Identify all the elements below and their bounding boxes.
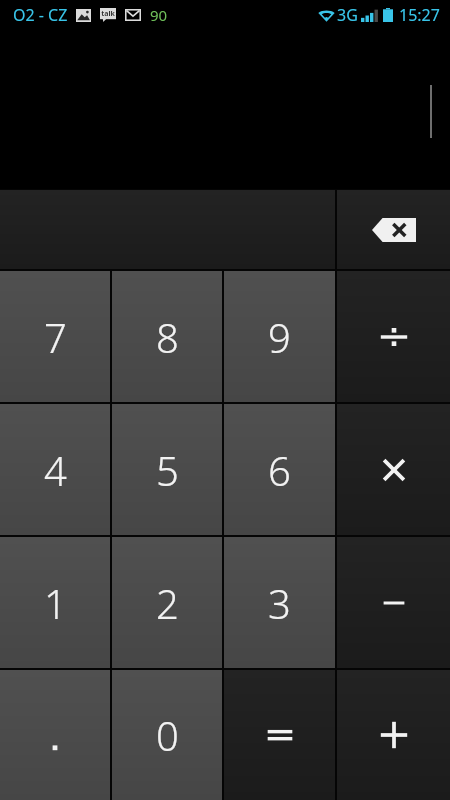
button[interactable]: 5 [112, 404, 222, 535]
staticText: 0 [156, 708, 179, 762]
button[interactable]: Multiply [337, 404, 450, 535]
button[interactable]: Divide [337, 271, 450, 402]
button[interactable]: 6 [224, 404, 335, 535]
button[interactable]: 3 [224, 537, 335, 668]
button[interactable]: 0 [112, 670, 222, 800]
staticText: 3G [337, 4, 358, 26]
staticText: 5 [156, 443, 179, 497]
button[interactable]: 4 [0, 404, 110, 535]
staticText: 15:27 [399, 4, 440, 26]
button[interactable]: 9 [224, 271, 335, 402]
staticText: 3 [268, 576, 291, 630]
staticText: 9 [268, 310, 291, 364]
button[interactable]: Subtract [337, 537, 450, 668]
staticText: 2 [156, 576, 179, 630]
button[interactable]: 2 [112, 537, 222, 668]
staticText: 6 [268, 443, 291, 497]
button[interactable]: 1 [0, 537, 110, 668]
button[interactable]: Equals [224, 670, 335, 800]
staticText: 4 [44, 443, 67, 497]
staticText: 90 [150, 5, 168, 25]
staticText: 1 [44, 576, 67, 630]
button[interactable]: 7 [0, 271, 110, 402]
staticText: talk [101, 9, 115, 19]
button[interactable]: Backspace [337, 190, 450, 269]
staticText: O2 - CZ [13, 4, 68, 26]
staticText: 8 [156, 310, 179, 364]
staticText: 7 [44, 310, 67, 364]
button[interactable]: Decimal point [0, 670, 110, 800]
button[interactable]: 8 [112, 271, 222, 402]
button[interactable]: Add [337, 670, 450, 800]
